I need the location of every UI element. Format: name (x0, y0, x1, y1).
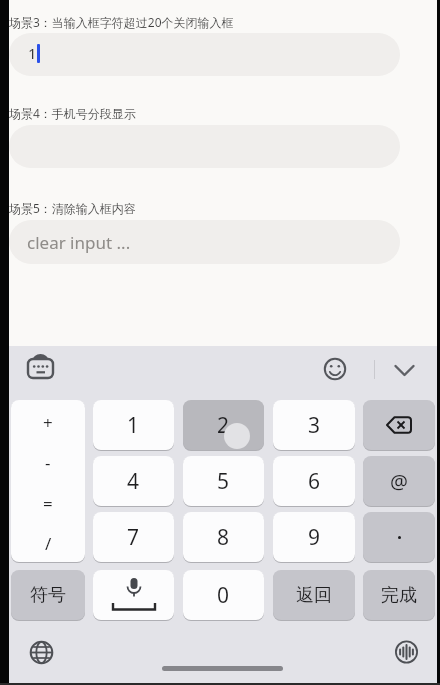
button[interactable]: 8 (183, 512, 264, 562)
button[interactable]: 6 (273, 456, 355, 506)
staticText: 1 (127, 411, 140, 440)
button[interactable] (93, 570, 174, 620)
staticText: 0 (217, 581, 230, 610)
staticText: 场景4：手机号分段显示 (9, 105, 136, 121)
button[interactable] (24, 350, 58, 384)
button[interactable] (363, 400, 435, 450)
staticText: @ (390, 468, 408, 495)
button[interactable] (395, 640, 419, 664)
staticText: 7 (127, 523, 140, 552)
staticText: 2 (217, 411, 230, 440)
staticText: 5 (217, 467, 230, 496)
button[interactable]: 完成 (363, 570, 435, 620)
button[interactable]: 0 (183, 570, 264, 620)
button[interactable]: clear input ... (9, 220, 400, 264)
staticText: 3 (308, 411, 321, 440)
button[interactable] (29, 640, 54, 665)
button[interactable]: 9 (273, 512, 355, 562)
button[interactable]: 7 (93, 512, 174, 562)
button[interactable]: 1 (9, 33, 400, 76)
staticText: = (43, 492, 53, 512)
button[interactable]: 1 (93, 400, 174, 450)
button[interactable]: 4 (93, 456, 174, 506)
staticText: 场景5：清除输入框内容 (9, 200, 136, 216)
button[interactable]: 3 (273, 400, 355, 450)
staticText: 9 (308, 523, 321, 552)
button[interactable] (363, 512, 435, 562)
staticText: 场景3：当输入框字符超过20个关闭输入框 (9, 14, 234, 30)
staticText: 返回 (296, 584, 332, 607)
staticText: - (45, 451, 51, 471)
button[interactable]: + (11, 400, 85, 562)
staticText: / (45, 532, 52, 552)
button[interactable]: @ (363, 456, 435, 506)
staticText: 符号 (30, 584, 66, 607)
staticText: clear input ... (27, 231, 131, 254)
staticText: 8 (217, 523, 230, 552)
staticText: 6 (308, 467, 321, 496)
staticText: 1 (28, 43, 37, 63)
button[interactable] (323, 357, 347, 381)
button[interactable]: 2 (183, 400, 264, 450)
staticText: 完成 (381, 584, 417, 607)
staticText: + (43, 411, 53, 431)
staticText: 4 (127, 467, 140, 496)
button[interactable]: 返回 (273, 570, 355, 620)
button[interactable]: 5 (183, 456, 264, 506)
button[interactable] (394, 362, 415, 379)
button[interactable]: 符号 (11, 570, 85, 620)
